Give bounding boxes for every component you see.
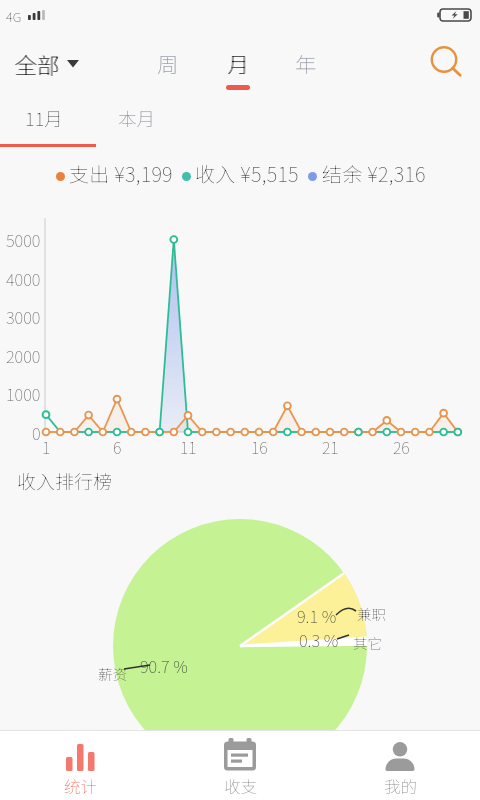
staticText: 90.7 % — [140, 654, 188, 678]
staticText: 1000 — [6, 382, 41, 406]
staticText: 本月 — [118, 105, 156, 132]
button[interactable]: 年 — [284, 42, 328, 84]
button[interactable]: 本月 — [92, 96, 182, 140]
button[interactable]: 统计 — [0, 731, 160, 800]
staticText: 其它 — [353, 632, 382, 653]
button[interactable]: 11月 — [0, 96, 88, 140]
button[interactable]: 我的 — [320, 731, 480, 800]
staticText: 收入 ¥5,515 — [195, 159, 299, 188]
staticText: 薪资 — [98, 663, 127, 684]
staticText: 全部 — [14, 48, 60, 81]
staticText: 周 — [157, 48, 179, 79]
staticText: 结余 ¥2,316 — [322, 159, 426, 188]
staticText: 0 — [32, 421, 41, 445]
staticText: 6 — [113, 435, 122, 458]
staticText: 3000 — [6, 305, 41, 329]
staticText: 2000 — [6, 344, 41, 368]
staticText: 月 — [227, 48, 249, 79]
staticText: 月 — [228, 48, 250, 79]
staticText: 26 — [393, 435, 410, 458]
staticText: 11 — [180, 435, 197, 458]
button[interactable]: 全部 — [8, 42, 86, 82]
staticText: 4G — [6, 7, 22, 26]
staticText: 支出 ¥3,199 — [69, 159, 173, 188]
staticText: 9.1 % — [297, 604, 337, 628]
button[interactable] — [424, 42, 466, 82]
button[interactable]: 收支 — [160, 731, 320, 800]
staticText: 全部 — [15, 48, 61, 81]
staticText: 21 — [322, 435, 339, 458]
staticText: 16 — [251, 435, 268, 458]
staticText: 兼职 — [357, 603, 386, 624]
staticText: 5000 — [6, 228, 41, 252]
button[interactable]: 周 — [146, 42, 190, 84]
staticText: 11月 — [25, 105, 63, 132]
staticText: 收入排行榜 — [17, 467, 113, 495]
staticText: 年 — [295, 48, 317, 79]
staticText: 收支 — [224, 774, 257, 798]
button[interactable]: 月 — [216, 42, 260, 84]
staticText: 我的 — [384, 774, 417, 798]
staticText: 4000 — [6, 267, 41, 291]
staticText: 统计 — [64, 774, 97, 798]
staticText: 1 — [42, 435, 51, 458]
staticText: 0.3 % — [299, 628, 339, 652]
